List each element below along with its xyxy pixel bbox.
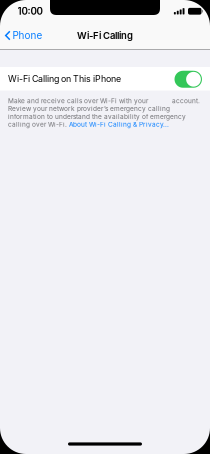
- button[interactable]: Wi-Fi Calling on This iPhone: [0, 67, 210, 90]
- staticText: Make and receive calls over Wi-Fi with y…: [8, 97, 200, 128]
- staticText: 10:00: [17, 5, 42, 17]
- button[interactable]: Make and receive calls over Wi-Fi with y…: [0, 90, 210, 128]
- staticText: Wi-Fi Calling on This iPhone: [8, 73, 121, 84]
- staticText: Wi-Fi Calling: [77, 30, 133, 41]
- staticText: Phone: [13, 29, 43, 41]
- button[interactable]: Phone: [0, 25, 49, 45]
